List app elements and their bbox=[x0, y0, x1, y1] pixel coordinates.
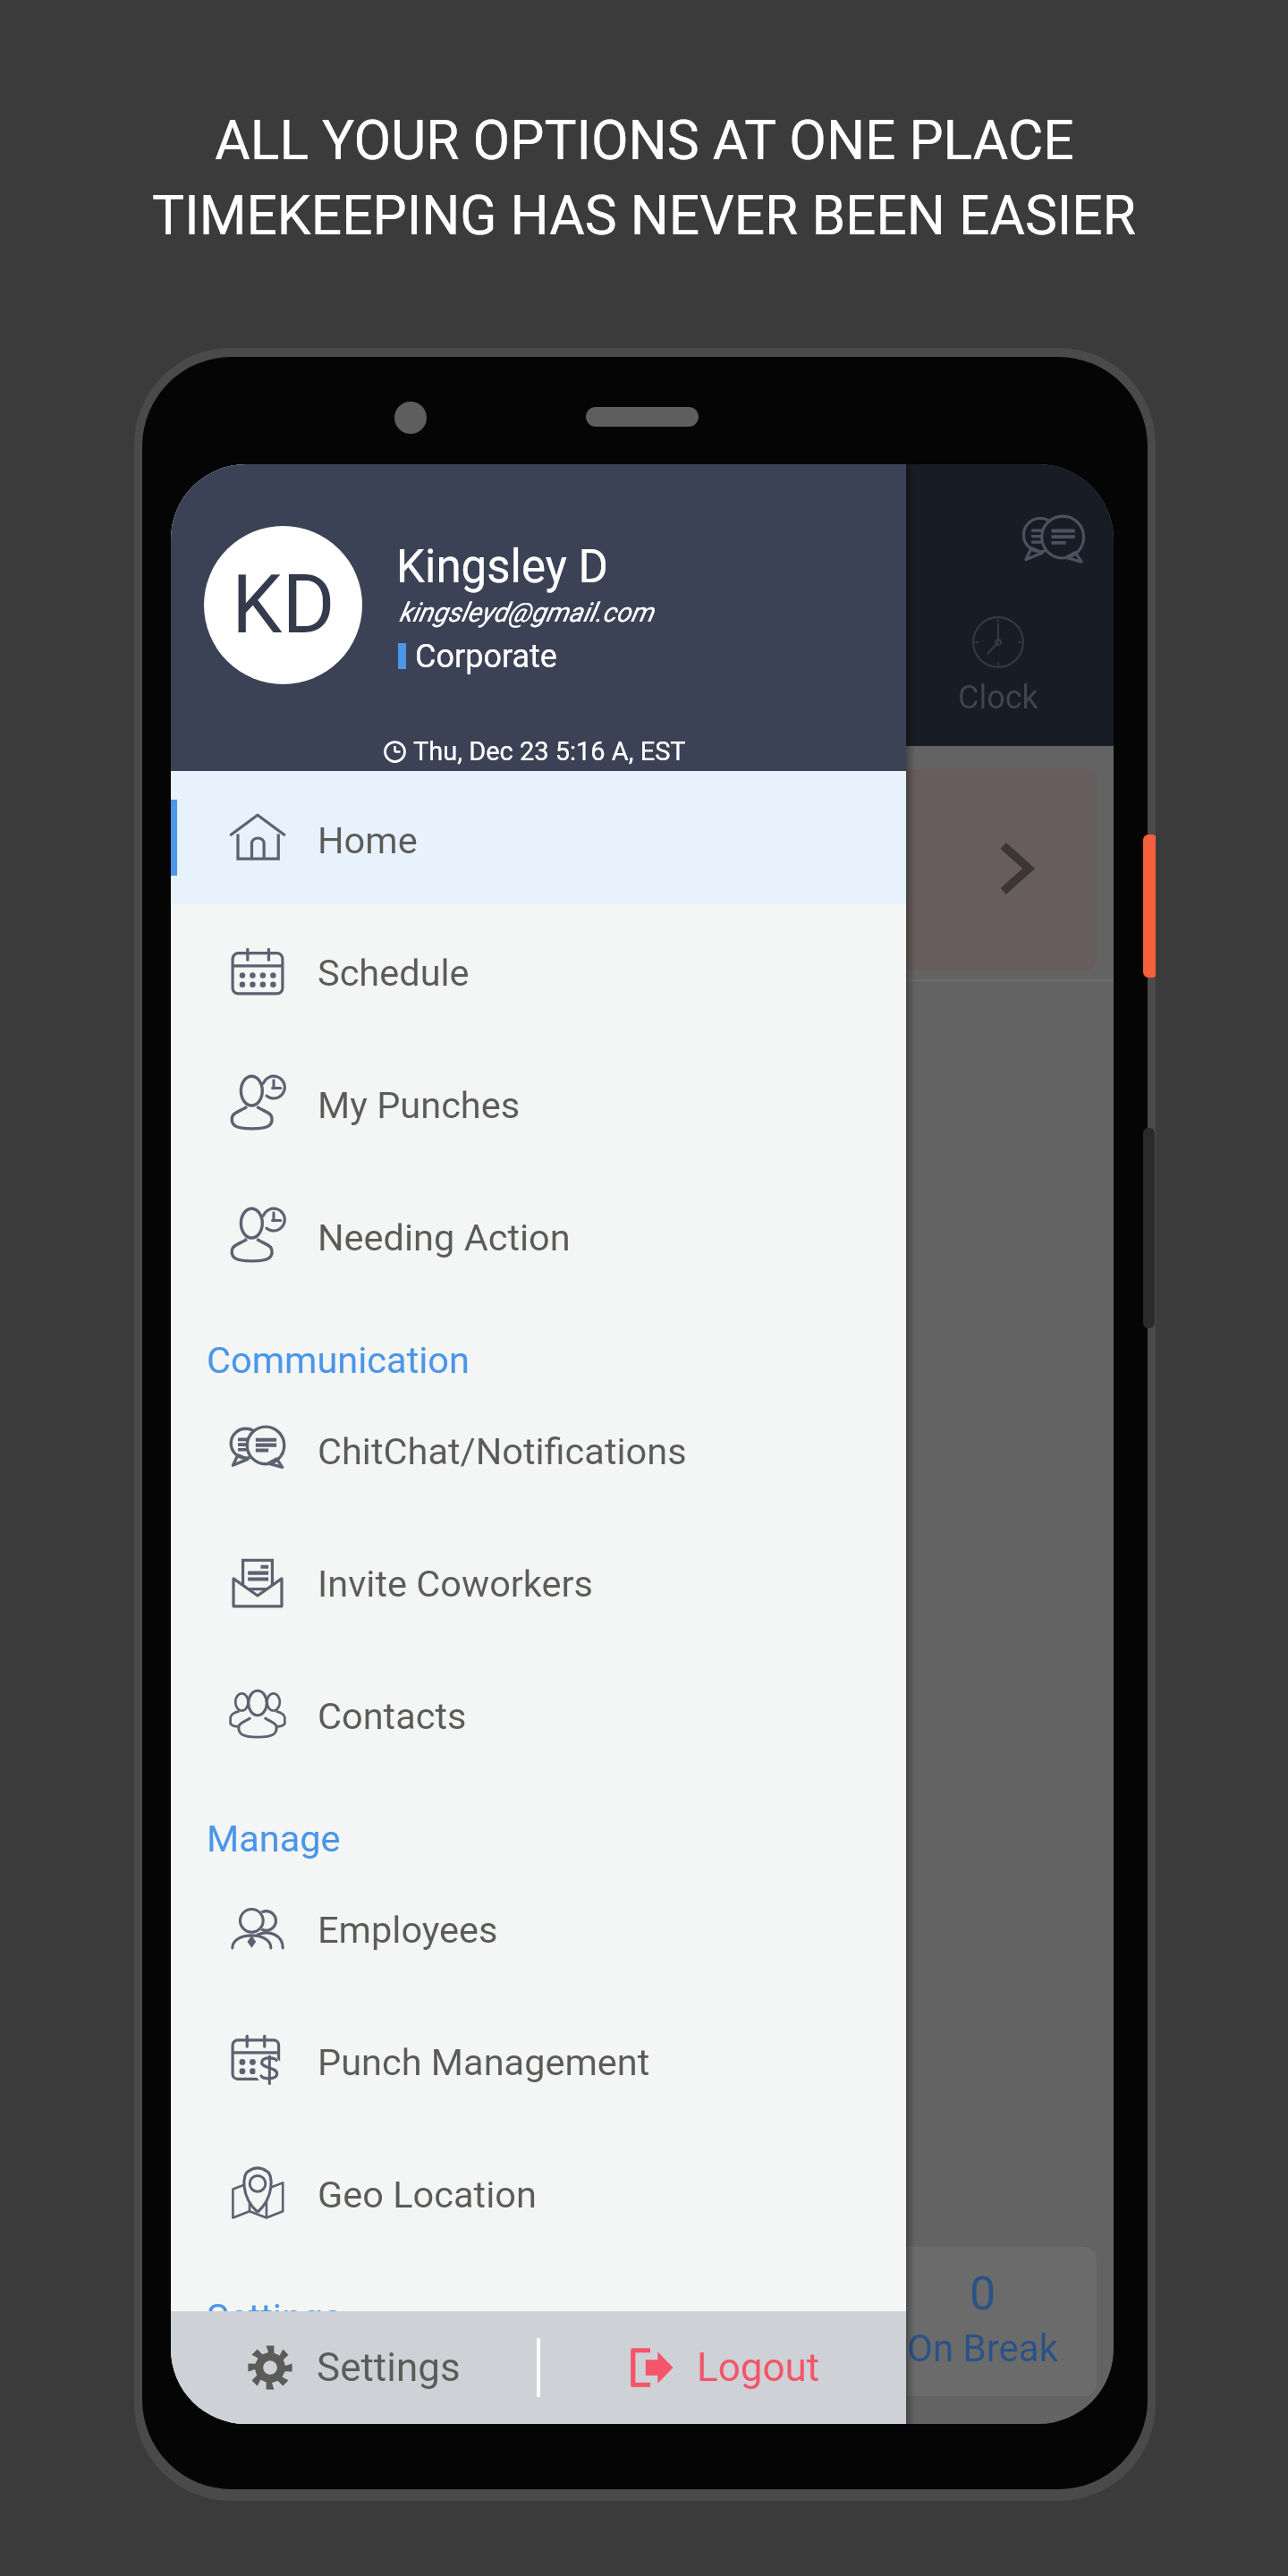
staticText: Kingsley D bbox=[396, 540, 608, 594]
button[interactable]: My Punches bbox=[171, 1036, 906, 1168]
button[interactable]: Settings bbox=[171, 2311, 537, 2424]
staticText: Punch Management bbox=[318, 2040, 650, 2084]
staticText: Thu, Dec 23 5:16 A, EST bbox=[413, 736, 686, 767]
staticText: Employees bbox=[318, 1908, 498, 1952]
staticText: kingsleyd@gmail.com bbox=[399, 597, 654, 628]
button[interactable]: Needing Action bbox=[171, 1168, 906, 1301]
button[interactable]: Home bbox=[171, 771, 906, 903]
staticText: Schedule bbox=[318, 951, 470, 995]
button[interactable]: Logout bbox=[540, 2311, 906, 2424]
staticText: Logout bbox=[697, 2344, 820, 2391]
button[interactable]: Geo Location bbox=[171, 2125, 906, 2258]
button[interactable]: Invite Coworkers bbox=[171, 1514, 906, 1647]
button[interactable]: ChitChat bbox=[1022, 509, 1085, 564]
button[interactable]: Employees bbox=[171, 1860, 906, 1993]
staticText: Communication bbox=[207, 1338, 470, 1382]
staticText: Home bbox=[318, 818, 418, 862]
button[interactable]: Schedule bbox=[171, 903, 906, 1036]
staticText: TIMEKEEPING HAS NEVER BEEN EASIER bbox=[152, 184, 1136, 248]
staticText: On Break bbox=[907, 2326, 1058, 2370]
staticText: Geo Location bbox=[318, 2173, 537, 2216]
staticText: 0 bbox=[970, 2267, 996, 2321]
staticText: Settings bbox=[317, 2344, 461, 2391]
staticText: ALL YOUR OPTIONS AT ONE PLACE bbox=[215, 109, 1074, 173]
staticText: Invite Coworkers bbox=[318, 1562, 593, 1606]
button[interactable]: 0 bbox=[869, 2247, 1097, 2396]
staticText: Clock bbox=[958, 679, 1038, 716]
button[interactable] bbox=[869, 769, 1097, 970]
button[interactable]: Punch Management bbox=[171, 1993, 906, 2125]
staticText: ChitChat/Notifications bbox=[318, 1429, 687, 1473]
staticText: Manage bbox=[207, 1817, 341, 1860]
staticText: Contacts bbox=[318, 1694, 467, 1738]
button[interactable]: ChitChat/Notifications bbox=[171, 1382, 906, 1514]
staticText: My Punches bbox=[318, 1083, 521, 1127]
staticText: Needing Action bbox=[318, 1216, 571, 1259]
button[interactable]: Clock bbox=[949, 614, 1047, 716]
staticText: Settings bbox=[207, 2295, 343, 2339]
staticText: KD bbox=[232, 558, 335, 652]
staticText: Corporate bbox=[415, 638, 557, 675]
button[interactable]: Contacts bbox=[171, 1647, 906, 1779]
